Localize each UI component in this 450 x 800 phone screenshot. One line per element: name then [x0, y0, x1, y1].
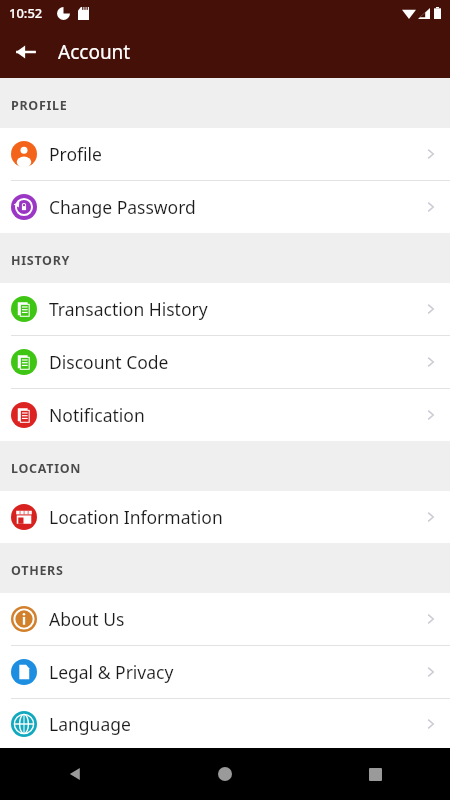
button[interactable]: Recent apps	[300, 748, 450, 800]
button[interactable]: Location Information	[0, 491, 450, 543]
staticText: Account	[58, 39, 131, 65]
staticText: LOCATION	[11, 460, 82, 477]
staticText: HISTORY	[11, 252, 71, 269]
staticText: PROFILE	[11, 97, 68, 114]
button[interactable]: Profile	[0, 128, 450, 180]
staticText: About Us	[49, 607, 424, 631]
staticText: Profile	[49, 142, 424, 166]
button[interactable]: Back	[0, 748, 150, 800]
button[interactable]: Transaction History	[0, 283, 450, 335]
staticText: Notification	[49, 403, 424, 427]
button[interactable]: Change Password	[0, 181, 450, 233]
staticText: Transaction History	[49, 297, 424, 321]
staticText: Language	[49, 712, 424, 736]
staticText: OTHERS	[11, 562, 64, 579]
staticText: Discount Code	[49, 350, 424, 374]
button[interactable]: Discount Code	[0, 336, 450, 388]
button[interactable]: Legal & Privacy	[0, 646, 450, 698]
button[interactable]: About Us	[0, 593, 450, 645]
staticText: Legal & Privacy	[49, 660, 424, 684]
button[interactable]: Back	[8, 34, 44, 70]
button[interactable]: Home	[150, 748, 300, 800]
staticText: Location Information	[49, 505, 424, 529]
button[interactable]: Language	[0, 699, 450, 748]
staticText: 10:52	[9, 4, 43, 22]
staticText: Change Password	[49, 195, 424, 219]
button[interactable]: Notification	[0, 389, 450, 441]
